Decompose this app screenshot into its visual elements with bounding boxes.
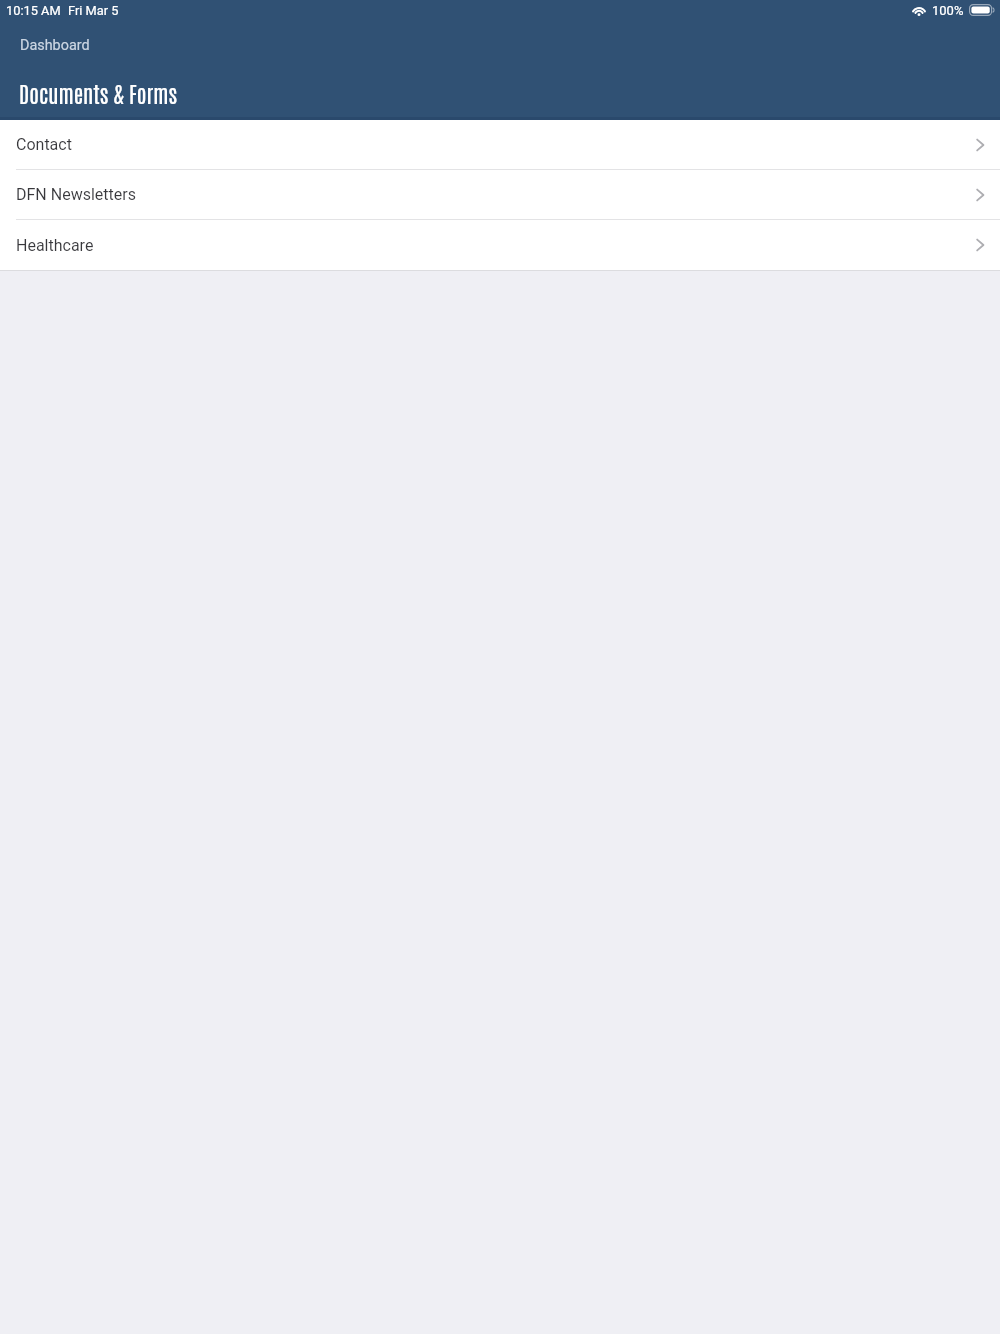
staticText: Dashboard	[20, 37, 90, 54]
staticText: Contact	[16, 135, 72, 154]
button[interactable]: DFN Newsletters	[0, 170, 1000, 220]
staticText: Healthcare	[16, 236, 94, 255]
staticText: DFN Newsletters	[16, 185, 136, 204]
other: Wi-Fi	[911, 5, 927, 16]
staticText: Fri Mar 5	[68, 3, 119, 18]
button[interactable]: Contact	[0, 120, 1000, 170]
staticText: 100%	[932, 3, 964, 18]
staticText: 10:15 AM	[6, 3, 61, 18]
other: Battery	[969, 4, 995, 16]
button[interactable]: Dashboard	[8, 30, 104, 61]
button[interactable]: Healthcare	[0, 220, 1000, 270]
staticText: Documents & Forms	[19, 79, 178, 107]
